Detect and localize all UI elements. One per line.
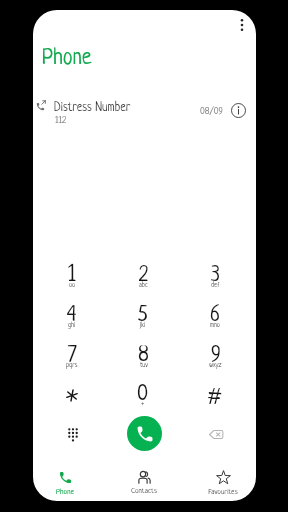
staticText: def	[211, 282, 220, 289]
staticText: 9	[211, 344, 221, 367]
button[interactable]: 9	[188, 344, 242, 378]
staticText: 08/09	[200, 107, 223, 117]
button[interactable]: Backspace	[204, 422, 228, 446]
staticText: Phone	[42, 47, 92, 70]
button[interactable]: Keypad	[62, 423, 84, 445]
button[interactable]: 6	[188, 304, 242, 338]
button[interactable]: Phone	[39, 470, 91, 496]
button[interactable]: 5	[116, 304, 170, 338]
staticText: 5	[138, 304, 148, 327]
staticText: tuv	[140, 362, 148, 369]
staticText: oo	[69, 282, 76, 289]
staticText: Phone	[56, 488, 74, 496]
button[interactable]: Contacts	[118, 470, 170, 496]
button[interactable]: 0	[116, 383, 170, 417]
staticText: mno	[210, 322, 220, 329]
button[interactable]: Call	[127, 416, 162, 451]
staticText: #	[208, 387, 222, 410]
button[interactable]: 3	[188, 264, 242, 298]
button[interactable]: 2	[116, 264, 170, 298]
staticText: Distress Number	[54, 101, 131, 114]
staticText: +	[141, 401, 145, 408]
staticText: 6	[210, 304, 220, 327]
button[interactable]: Distress Number	[33, 96, 256, 126]
staticText: 2	[139, 264, 148, 287]
staticText: 0	[137, 383, 149, 406]
staticText: pqrs	[66, 362, 78, 369]
button[interactable]	[45, 383, 99, 417]
staticText: ghi	[68, 322, 76, 329]
staticText: Favourites	[208, 488, 238, 496]
staticText: wxyz	[209, 362, 222, 369]
staticText: jkl	[140, 322, 146, 329]
button[interactable]: 7	[45, 344, 99, 378]
button[interactable]: Favourites	[197, 470, 249, 496]
staticText: 3	[211, 264, 220, 287]
button[interactable]: 4	[45, 304, 99, 338]
staticText: Contacts	[131, 487, 157, 495]
button[interactable]: 1	[45, 264, 99, 298]
staticText: 7	[68, 344, 77, 367]
button[interactable]: 8	[116, 344, 170, 378]
staticText: abc	[139, 282, 148, 289]
staticText: 4	[67, 304, 77, 327]
staticText: 8	[138, 344, 149, 367]
button[interactable]: Call details	[228, 100, 248, 120]
button[interactable]: More options	[231, 14, 253, 36]
button[interactable]: #	[188, 383, 242, 417]
staticText: 112	[55, 115, 67, 126]
staticText: 1	[68, 264, 76, 287]
